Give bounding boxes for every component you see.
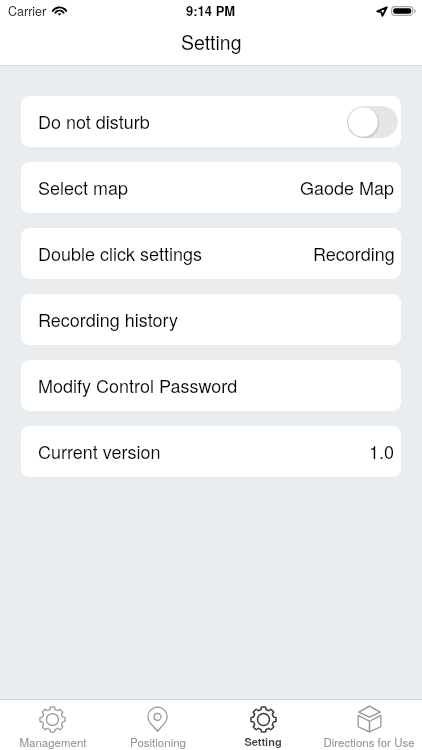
staticText: 1.0 xyxy=(369,438,395,464)
staticText: Current version xyxy=(38,438,161,464)
button[interactable]: Management xyxy=(0,700,105,750)
staticText: Recording xyxy=(313,240,395,266)
button[interactable]: Current version xyxy=(21,426,401,477)
button[interactable]: Select map xyxy=(21,162,401,213)
staticText: Directions for Use xyxy=(323,734,415,750)
button[interactable]: Directions for Use xyxy=(316,700,422,750)
staticText: Double click settings xyxy=(38,240,202,266)
button[interactable]: Recording history xyxy=(21,294,401,345)
staticText: Gaode Map xyxy=(300,174,395,200)
button[interactable]: Do not disturb toggle xyxy=(347,106,398,138)
button[interactable]: Setting xyxy=(210,700,316,750)
staticText: 9:14 PM xyxy=(186,1,236,20)
button[interactable]: Do not disturb xyxy=(21,96,401,147)
staticText: Recording history xyxy=(38,306,179,332)
staticText: Do not disturb xyxy=(38,108,150,134)
staticText: Select map xyxy=(38,174,129,200)
staticText: Setting xyxy=(181,28,242,56)
staticText: Management xyxy=(19,734,87,750)
button[interactable]: Double click settings xyxy=(21,228,401,279)
button[interactable]: Modify Control Password xyxy=(21,360,401,411)
staticText: Positioning xyxy=(130,734,186,750)
staticText: Modify Control Password xyxy=(38,372,238,398)
button[interactable]: Positioning xyxy=(105,700,210,750)
staticText: Carrier xyxy=(8,2,47,20)
staticText: Setting xyxy=(244,734,282,750)
